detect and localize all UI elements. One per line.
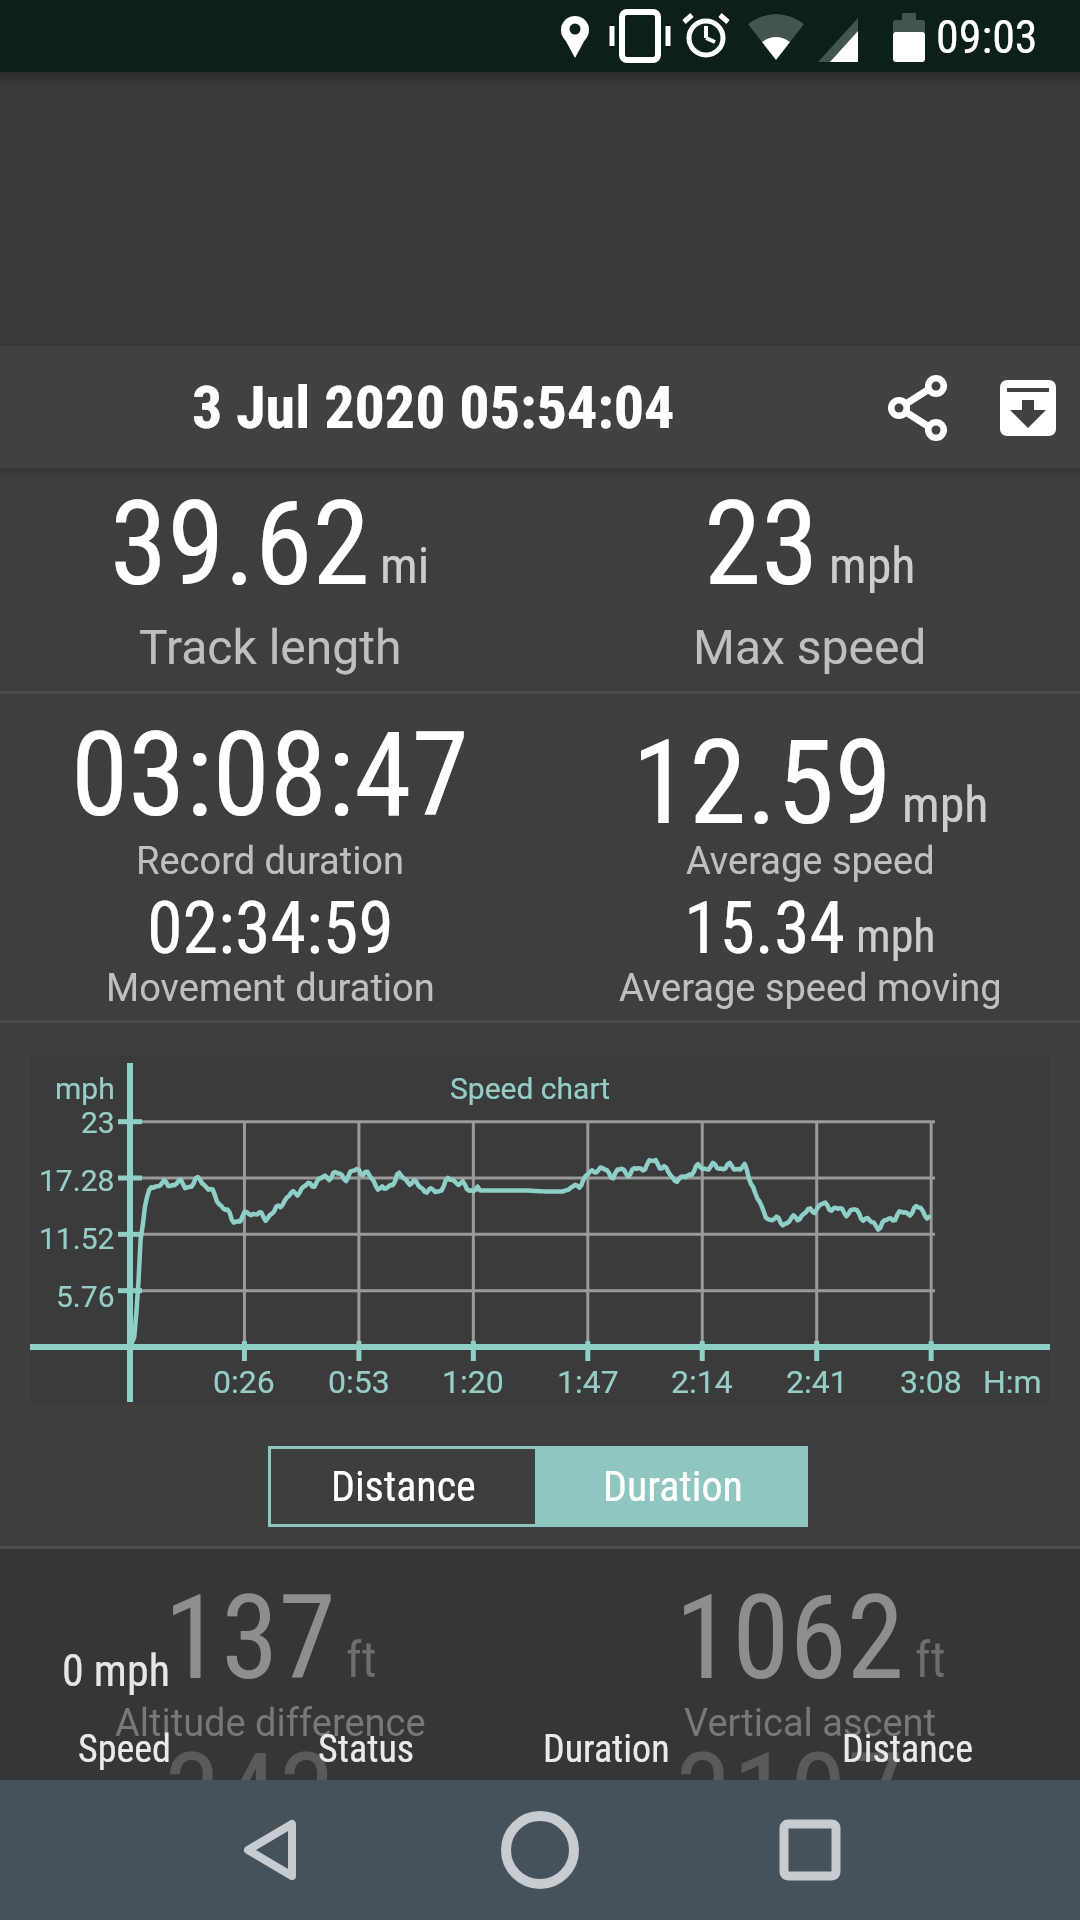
button[interactable]: Distance [268, 1446, 538, 1527]
staticText: mph [829, 537, 916, 596]
staticText: mi [380, 537, 430, 596]
staticText: Speed [78, 1727, 171, 1772]
staticText: 0:53 [328, 1363, 390, 1401]
staticText: Vertical ascent [684, 1701, 936, 1746]
staticText: Altitude difference [115, 1701, 426, 1746]
staticText: 3107 [675, 1728, 905, 1780]
staticText: Duration [603, 1462, 743, 1511]
staticText: 3:08 [900, 1363, 962, 1401]
staticText: 343 [164, 1728, 336, 1780]
staticText: 2:41 [786, 1363, 848, 1401]
staticText: 1062 [675, 1570, 905, 1706]
staticText: ft [915, 1631, 946, 1690]
staticText: H:m [983, 1363, 1042, 1401]
button[interactable] [988, 368, 1068, 448]
staticText: 09:03 [936, 10, 1038, 64]
staticText: 2:14 [671, 1363, 733, 1401]
staticText: Status [318, 1727, 415, 1772]
staticText: 12.59 [632, 715, 892, 851]
staticText: Distance [842, 1727, 973, 1772]
staticText: 3 Jul 2020 05:54:04 [192, 372, 675, 442]
button[interactable] [880, 368, 960, 448]
staticText: 17.28 [39, 1163, 115, 1198]
staticText: 39.62 [110, 476, 370, 612]
button[interactable]: Duration [538, 1446, 808, 1527]
staticText: mph [856, 909, 936, 963]
staticText: Average speed [686, 839, 935, 884]
button[interactable] [470, 1790, 610, 1910]
staticText: Movement duration [106, 966, 435, 1011]
button[interactable] [200, 1790, 340, 1910]
staticText: 137 [164, 1570, 336, 1706]
button[interactable] [740, 1790, 880, 1910]
staticText: Max speed [693, 619, 927, 675]
staticText: Record duration [136, 839, 405, 884]
staticText: 0 mph [62, 1645, 170, 1697]
staticText: 23 [704, 476, 819, 612]
staticText: 1:20 [442, 1363, 504, 1401]
staticText: 1:47 [557, 1363, 619, 1401]
staticText: 03:08:47 [71, 707, 469, 843]
staticText: Track length [139, 619, 402, 675]
staticText: Distance [331, 1462, 476, 1511]
staticText: ft [346, 1631, 377, 1690]
staticText: 23 [81, 1105, 115, 1140]
staticText: 15.34 [684, 886, 846, 970]
staticText: Duration [543, 1727, 670, 1772]
staticText: Speed chart [450, 1071, 611, 1106]
staticText: mph [55, 1071, 115, 1106]
staticText: 5.76 [56, 1279, 115, 1314]
staticText: 11.52 [39, 1221, 115, 1256]
staticText: 02:34:59 [147, 886, 394, 970]
staticText: Average speed moving [619, 966, 1002, 1011]
staticText: 0:26 [213, 1363, 275, 1401]
staticText: mph [902, 776, 989, 835]
